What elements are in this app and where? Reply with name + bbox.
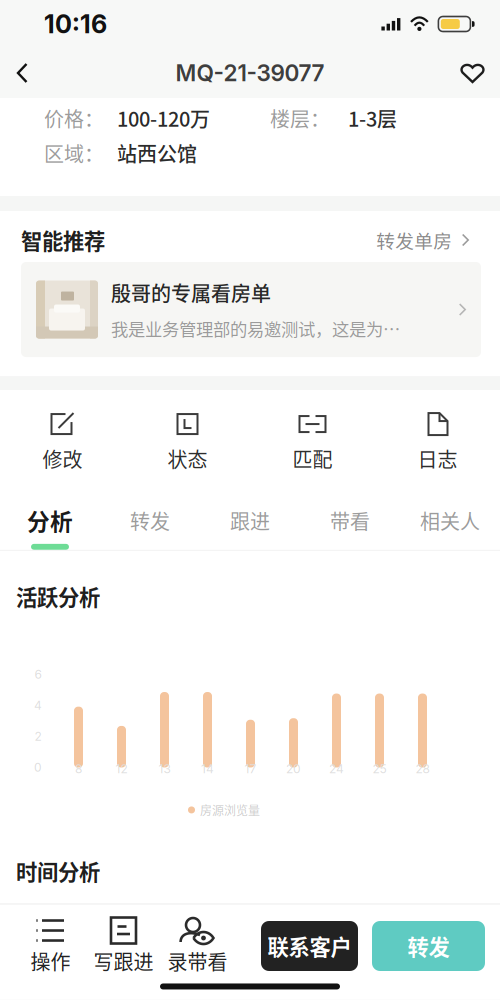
staticText: 10:16 [44, 9, 107, 39]
staticText: 智能推荐 [21, 225, 105, 255]
button[interactable]: 写跟进 [93, 916, 153, 975]
button[interactable]: 联系客户 [261, 921, 358, 971]
button[interactable]: 转发单房 [376, 222, 471, 257]
button[interactable]: 带看 [300, 497, 400, 548]
staticText: 录带看 [167, 946, 227, 975]
button[interactable]: 殷哥的专属看房单 [21, 262, 481, 357]
staticText: 17 [244, 762, 256, 776]
button[interactable]: 状态 [125, 409, 250, 473]
button[interactable]: 相关人 [400, 497, 500, 548]
staticText: 跟进 [230, 506, 270, 535]
staticText: 2 [34, 729, 41, 744]
staticText: 0 [34, 760, 42, 775]
staticText: 转发单房 [376, 226, 452, 253]
staticText: 楼层： [270, 103, 330, 132]
staticText: 活跃分析 [16, 581, 100, 612]
staticText: 房源浏览量 [200, 801, 260, 819]
staticText: 相关人 [420, 506, 480, 535]
staticText: 转发 [130, 506, 170, 535]
staticText: 站西公馆 [117, 138, 197, 167]
staticText: 分析 [27, 504, 73, 537]
button[interactable]: 操作 [30, 916, 70, 975]
button[interactable]: 转发 [100, 497, 200, 548]
staticText: 带看 [330, 506, 370, 535]
staticText: 转发 [407, 931, 449, 961]
staticText: 25 [372, 762, 386, 776]
staticText: 12 [115, 762, 127, 776]
staticText: 1-3层 [348, 103, 397, 132]
button[interactable]: 分析 [0, 495, 100, 550]
button[interactable]: 日志 [375, 409, 500, 473]
staticText: 8 [75, 762, 82, 776]
staticText: 修改 [42, 444, 82, 473]
staticText: MQ-21-39077 [175, 59, 324, 87]
staticText: 区域： [44, 138, 104, 167]
button[interactable]: Back [8, 51, 47, 95]
staticText: 时间分析 [16, 856, 100, 886]
staticText: 状态 [167, 444, 207, 473]
staticText: 13 [158, 762, 170, 776]
staticText: 我是业务管理部的易邀测试，这是为… [111, 316, 400, 341]
button[interactable]: 修改 [0, 409, 125, 473]
staticText: 14 [201, 762, 214, 776]
button[interactable]: Add to favorites [441, 52, 492, 94]
button[interactable]: 录带看 [167, 916, 227, 975]
button[interactable]: 跟进 [200, 497, 300, 548]
staticText: 日志 [417, 444, 457, 473]
staticText: 28 [415, 762, 429, 776]
staticText: 操作 [30, 946, 70, 975]
staticText: 6 [34, 667, 41, 682]
staticText: 殷哥的专属看房单 [111, 278, 271, 307]
staticText: 4 [34, 698, 42, 713]
staticText: 20 [286, 762, 301, 776]
staticText: 联系客户 [267, 931, 351, 961]
button[interactable]: 匹配 [250, 409, 375, 473]
staticText: 24 [329, 762, 344, 776]
staticText: 价格： [44, 103, 104, 132]
button[interactable]: 转发 [372, 921, 485, 971]
staticText: 匹配 [292, 444, 332, 473]
staticText: 写跟进 [93, 946, 153, 975]
staticText: 100-120万 [117, 103, 210, 132]
